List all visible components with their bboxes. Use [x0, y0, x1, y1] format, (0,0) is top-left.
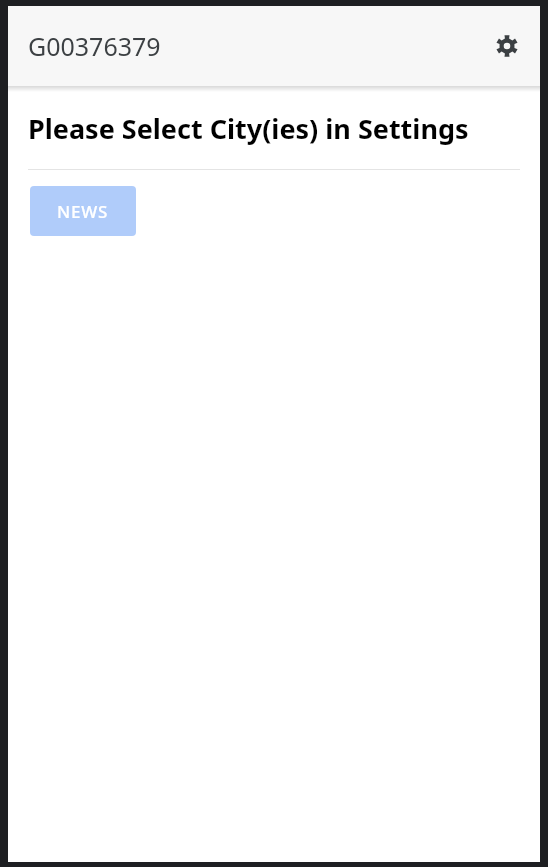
staticText: Please Select City(ies) in Settings [28, 110, 514, 147]
staticText: NEWS [57, 200, 109, 223]
staticText: G00376379 [28, 29, 161, 63]
button[interactable]: Settings [483, 22, 531, 70]
button[interactable]: NEWS [30, 186, 136, 236]
